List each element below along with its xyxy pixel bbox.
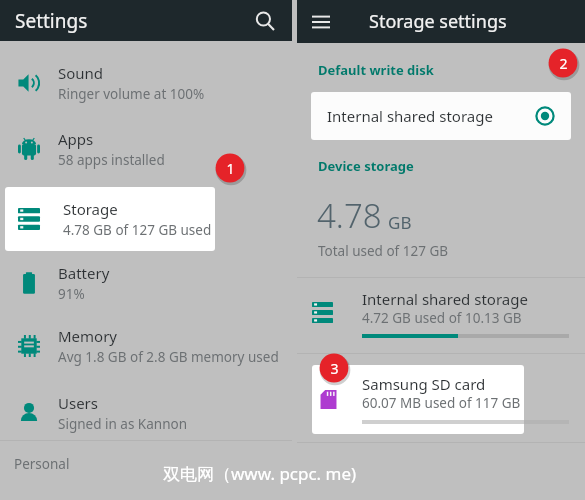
- button[interactable]: Search settings: [246, 2, 284, 40]
- staticText: Internal shared storage: [327, 106, 493, 126]
- button[interactable]: Sound: [0, 58, 292, 108]
- staticText: 91%: [58, 285, 85, 303]
- staticText: 3: [330, 359, 339, 378]
- staticText: 2: [559, 54, 568, 73]
- button[interactable]: Internal shared storage: [297, 278, 585, 353]
- button[interactable]: Apps: [0, 124, 292, 174]
- staticText: Storage settings: [369, 9, 507, 34]
- staticText: 60.07 MB used of 117 GB: [362, 394, 521, 412]
- staticText: Device storage: [318, 157, 414, 175]
- staticText: Total used of 127 GB: [318, 242, 449, 260]
- staticText: Avg 1.8 GB of 2.8 GB memory used: [58, 348, 279, 366]
- staticText: GB: [388, 211, 412, 234]
- button[interactable]: Samsung SD card: [312, 365, 524, 434]
- staticText: Personal: [14, 455, 70, 473]
- staticText: Sound: [58, 63, 104, 83]
- staticText: Storage: [63, 199, 118, 219]
- staticText: Samsung SD card: [362, 374, 486, 394]
- staticText: Ringer volume at 100%: [58, 85, 205, 103]
- staticText: Internal shared storage: [362, 289, 528, 309]
- button[interactable]: Open navigation drawer: [303, 4, 339, 40]
- button[interactable]: Memory: [0, 321, 292, 371]
- staticText: 4.78 GB of 127 GB used: [63, 221, 212, 239]
- button[interactable]: Internal shared storage: [311, 92, 571, 140]
- staticText: 4.72 GB used of 10.13 GB: [362, 309, 522, 327]
- staticText: Users: [58, 393, 98, 413]
- button[interactable]: Battery: [0, 258, 292, 308]
- button[interactable]: Storage: [5, 187, 215, 251]
- staticText: Signed in as Kannon: [58, 415, 187, 433]
- staticText: Battery: [58, 263, 110, 283]
- button[interactable]: Users: [0, 388, 292, 438]
- staticText: 4.78: [317, 193, 382, 238]
- staticText: 双电网（www. pcpc. me): [163, 462, 357, 485]
- staticText: 1: [226, 159, 235, 178]
- staticText: Default write disk: [318, 61, 434, 79]
- staticText: Memory: [58, 326, 118, 346]
- staticText: Settings: [15, 8, 88, 34]
- staticText: 58 apps installed: [58, 151, 165, 169]
- staticText: Apps: [58, 129, 94, 149]
